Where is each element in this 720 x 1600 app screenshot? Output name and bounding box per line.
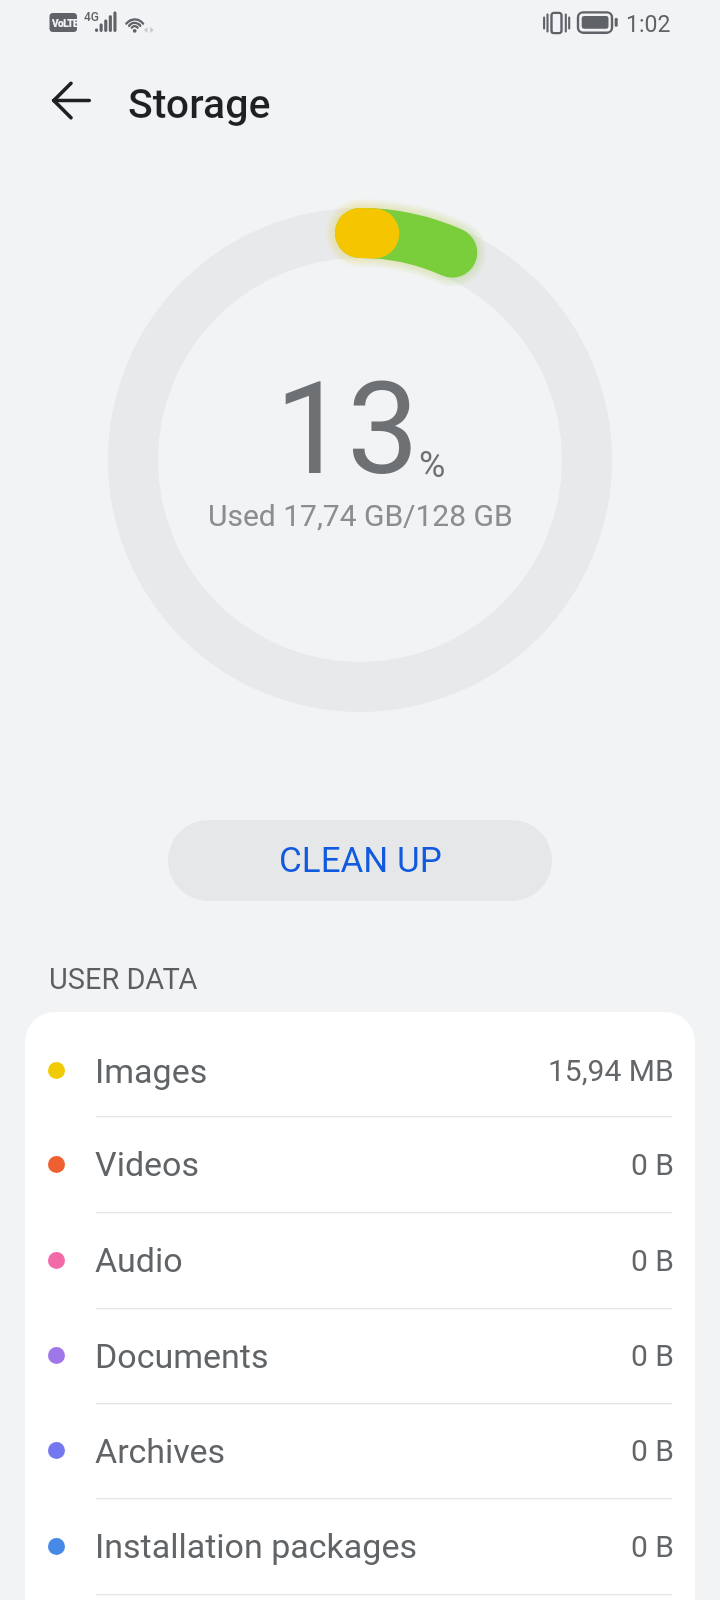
button[interactable]: Back — [40, 72, 104, 136]
staticText: Videos — [95, 1144, 200, 1184]
staticText: CLEAN UP — [279, 840, 442, 881]
button[interactable]: Installation packages — [25, 1498, 695, 1594]
staticText: 0 B — [631, 1243, 674, 1278]
staticText: Used 17,74 GB/128 GB — [208, 498, 513, 533]
staticText: VoLTE — [52, 18, 79, 30]
staticText: 1:02 — [626, 11, 671, 38]
staticText: 13 — [275, 354, 419, 504]
staticText: 4G — [84, 10, 99, 24]
button[interactable]: Documents — [25, 1308, 695, 1403]
staticText: 0 B — [631, 1529, 674, 1564]
button[interactable]: Archives — [25, 1403, 695, 1498]
staticText: Documents — [95, 1336, 269, 1376]
button[interactable]: Videos — [25, 1116, 695, 1212]
staticText: Audio — [95, 1240, 183, 1280]
staticText: Archives — [95, 1431, 226, 1471]
button[interactable]: Audio — [25, 1212, 695, 1308]
staticText: 0 B — [631, 1433, 674, 1468]
staticText: 0 B — [631, 1338, 674, 1373]
staticText: 15,94 MB — [548, 1053, 674, 1088]
staticText: Storage — [128, 80, 271, 128]
button[interactable]: CLEAN UP — [168, 820, 552, 901]
button[interactable]: Images — [25, 1025, 695, 1116]
staticText: Images — [95, 1051, 208, 1091]
staticText: Installation packages — [95, 1526, 417, 1566]
staticText: 0 B — [631, 1147, 674, 1182]
staticText: USER DATA — [49, 962, 198, 996]
staticText: % — [419, 444, 446, 486]
